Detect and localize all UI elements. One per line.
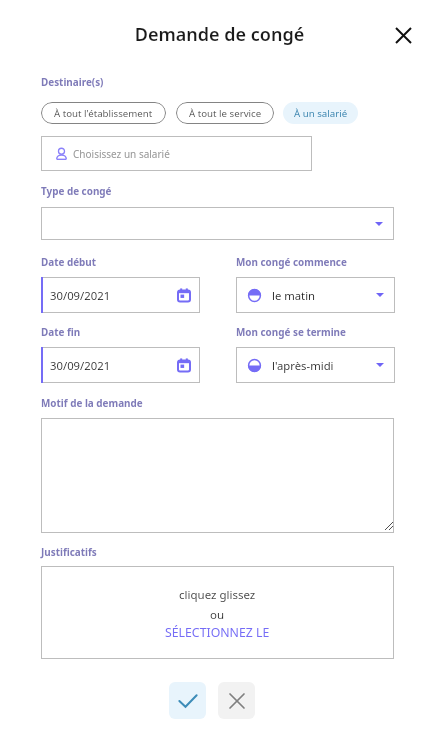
button[interactable]: le matin [236, 277, 395, 313]
staticText: 30/09/2021 [50, 358, 111, 373]
staticText: l'après-midi [272, 358, 334, 373]
button[interactable]: À un salarié [283, 102, 358, 124]
staticText: Date fin [41, 325, 81, 338]
staticText: SÉLECTIONNEZ LE [165, 624, 270, 641]
button[interactable] [41, 418, 394, 533]
button[interactable]: l'après-midi [236, 347, 395, 383]
staticText: Mon congé commence [236, 255, 347, 268]
staticText: À tout l'établissement [54, 107, 153, 120]
button[interactable] [41, 207, 394, 240]
button[interactable]: À tout l'établissement [41, 102, 166, 124]
button[interactable]: À tout le service [176, 102, 274, 124]
button[interactable]: 30/09/2021 [41, 277, 200, 313]
button[interactable]: Annuler [218, 682, 255, 719]
staticText: Type de congé [41, 184, 112, 197]
button[interactable]: cliquez glissez [41, 566, 394, 659]
staticText: Date début [41, 255, 97, 268]
staticText: ou [210, 607, 225, 623]
button[interactable]: Choisissez un salarié [41, 136, 312, 171]
staticText: À tout le service [189, 107, 262, 120]
staticText: Motif de la demande [41, 396, 143, 409]
staticText: cliquez glissez [179, 587, 256, 603]
button[interactable]: 30/09/2021 [41, 347, 200, 383]
staticText: Justificatifs [41, 545, 97, 558]
staticText: Choisissez un salarié [73, 147, 170, 161]
button[interactable]: Valider [169, 682, 206, 719]
staticText: Mon congé se termine [236, 325, 346, 338]
staticText: 30/09/2021 [50, 288, 111, 303]
button[interactable]: Fermer [390, 22, 416, 48]
staticText: Destinaire(s) [41, 75, 104, 88]
staticText: Demande de congé [2, 22, 435, 47]
staticText: le matin [272, 288, 316, 303]
staticText: À un salarié [294, 107, 348, 120]
